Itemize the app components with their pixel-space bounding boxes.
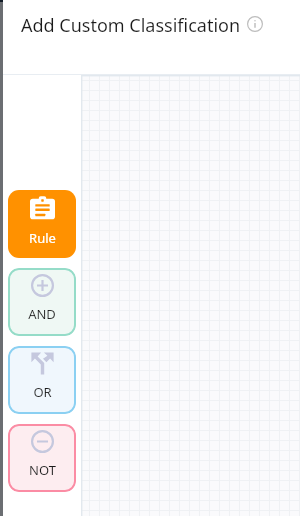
staticText: OR bbox=[33, 383, 52, 401]
staticText: Rule bbox=[29, 229, 56, 247]
button[interactable]: Info bbox=[247, 16, 263, 32]
staticText: NOT bbox=[29, 461, 56, 479]
button[interactable]: NOT bbox=[8, 424, 76, 492]
button[interactable]: AND bbox=[8, 268, 76, 336]
staticText: AND bbox=[28, 305, 56, 323]
button[interactable]: Rule bbox=[8, 190, 76, 258]
button[interactable]: OR bbox=[8, 346, 76, 414]
staticText: Add Custom Classification bbox=[21, 13, 241, 38]
